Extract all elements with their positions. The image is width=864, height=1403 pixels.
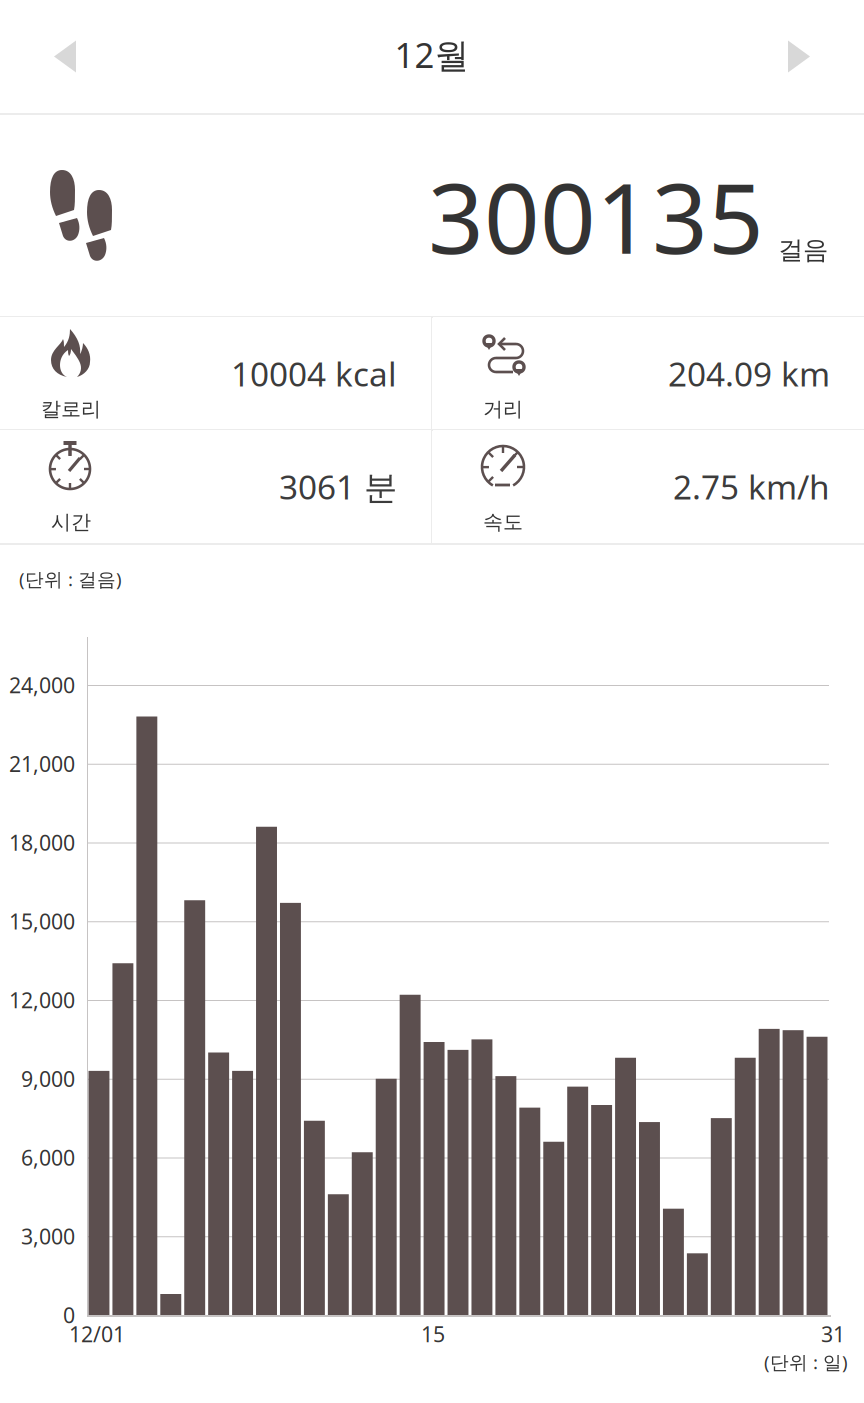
button[interactable]: Previous month	[17, 8, 113, 104]
staticText: 시간	[51, 510, 91, 534]
staticText: 칼로리	[41, 397, 101, 421]
staticText: 204.09 km	[668, 351, 830, 396]
staticText: 3,000	[21, 1222, 75, 1250]
staticText: 18,000	[9, 828, 75, 857]
staticText: 10004 kcal	[231, 351, 397, 396]
staticText: 15,000	[9, 907, 75, 935]
staticText: 24,000	[9, 671, 75, 699]
staticText: 속도	[483, 510, 523, 534]
staticText: 15	[421, 1320, 445, 1348]
staticText: (단위 : 걸음)	[19, 567, 122, 591]
staticText: 0	[63, 1301, 75, 1329]
button[interactable]: Next month	[751, 8, 847, 104]
staticText: 2.75 km/h	[673, 464, 830, 509]
staticText: 31	[821, 1320, 845, 1348]
staticText: (단위 : 일)	[764, 1350, 848, 1374]
staticText: 걸음	[778, 234, 828, 265]
staticText: 거리	[483, 397, 523, 421]
staticText: 9,000	[21, 1065, 75, 1093]
staticText: 12/01	[69, 1320, 125, 1348]
staticText: 12월	[394, 31, 469, 77]
staticText: 21,000	[9, 750, 75, 778]
button[interactable]: 속도	[433, 430, 864, 543]
staticText: 3061 분	[279, 464, 397, 509]
staticText: 12,000	[9, 986, 75, 1014]
staticText: 6,000	[21, 1143, 75, 1172]
button[interactable]: 칼로리	[0, 317, 431, 430]
staticText: 300135	[428, 151, 764, 281]
button[interactable]: 시간	[0, 430, 431, 543]
button[interactable]: 거리	[433, 317, 864, 430]
